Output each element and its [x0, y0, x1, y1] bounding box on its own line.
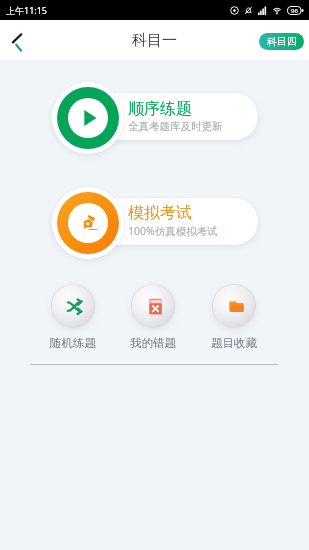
button[interactable]: 题目收藏 [198, 284, 270, 350]
staticText: 随机练题 [50, 336, 96, 350]
staticText: 模拟考试 [128, 203, 192, 223]
staticText: 上午11:15 [6, 4, 48, 16]
staticText: 顺序练题 [128, 99, 192, 119]
button[interactable]: 模拟考试 [51, 198, 258, 245]
staticText: 科目四 [267, 35, 297, 48]
button[interactable]: Back [0, 21, 38, 59]
staticText: 100%仿真模拟考试 [128, 224, 218, 238]
button[interactable]: 科目四 [259, 33, 304, 50]
staticText: 我的错题 [130, 336, 176, 350]
staticText: 题目收藏 [211, 336, 257, 350]
staticText: 全真考题库及时更新 [128, 120, 223, 133]
staticText: 96 [291, 7, 298, 15]
button[interactable]: 随机练题 [37, 284, 109, 350]
button[interactable] [57, 87, 119, 149]
staticText: 科目一 [132, 31, 177, 50]
button[interactable] [57, 192, 119, 254]
button[interactable]: 顺序练题 [51, 93, 258, 140]
button[interactable]: 我的错题 [117, 284, 189, 350]
